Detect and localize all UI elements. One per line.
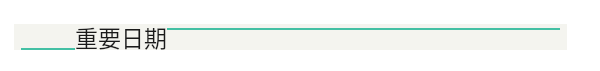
staticText: 重要日期 [75, 20, 167, 53]
button[interactable] [14, 24, 567, 50]
